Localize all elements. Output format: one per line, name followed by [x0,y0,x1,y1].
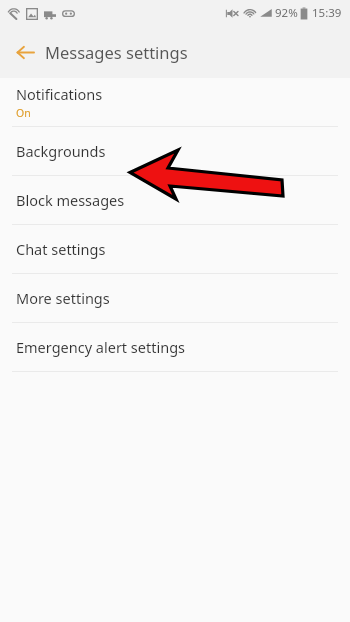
button[interactable]: Chat settings [0,225,350,273]
button[interactable]: More settings [0,274,350,322]
staticText: Messages settings [45,41,188,63]
staticText: Emergency alert settings [16,337,186,357]
button[interactable]: Back [8,35,42,69]
button[interactable]: Backgrounds [0,127,350,175]
staticText: More settings [16,288,110,308]
staticText: 15:39 [312,5,342,21]
staticText: Notifications [16,84,103,104]
staticText: On [16,106,31,120]
staticText: 92% [275,5,298,21]
staticText: Block messages [16,190,125,210]
button[interactable]: Notifications [0,78,350,126]
button[interactable]: Emergency alert settings [0,323,350,371]
button[interactable]: Block messages [0,176,350,224]
staticText: Backgrounds [16,141,106,161]
staticText: Chat settings [16,239,106,259]
